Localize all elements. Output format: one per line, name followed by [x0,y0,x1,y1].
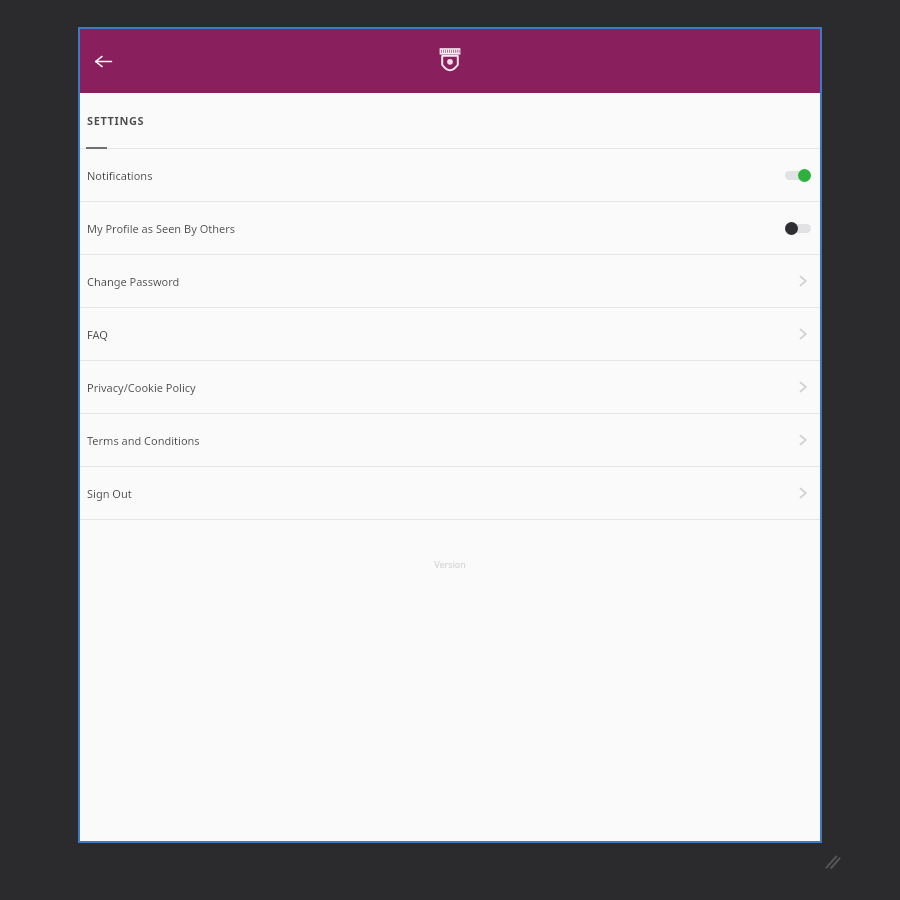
button[interactable]: Privacy/Cookie Policy [80,361,820,413]
button[interactable]: Terms and Conditions [80,414,820,466]
staticText: Terms and Conditions [87,433,200,448]
button[interactable]: FAQ [80,308,820,360]
button[interactable]: Back [86,44,120,78]
button[interactable]: Sign Out [80,467,820,519]
staticText: Notifications [87,168,153,183]
button[interactable]: My Profile as Seen By Others [80,202,820,254]
staticText: My Profile as Seen By Others [87,221,236,236]
staticText: Change Password [87,274,180,289]
staticText: SETTINGS [87,113,145,128]
button[interactable]: Notifications [80,149,820,201]
staticText: FAQ [87,327,108,342]
button[interactable]: Change Password [80,255,820,307]
staticText: Sign Out [87,486,132,501]
staticText: Privacy/Cookie Policy [87,380,196,395]
